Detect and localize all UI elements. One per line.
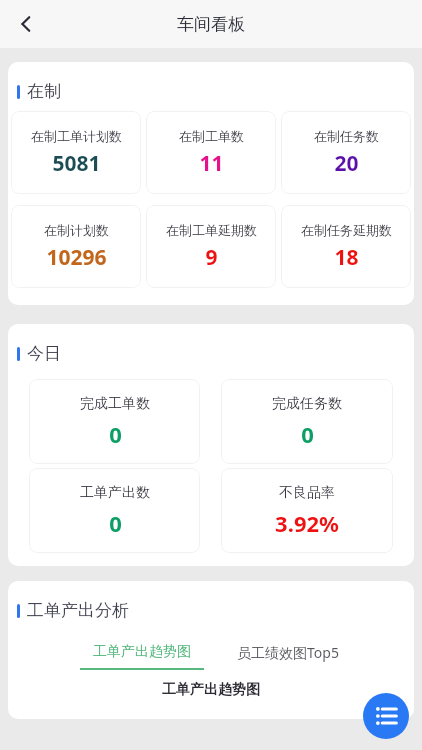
staticText: 0 <box>301 419 314 449</box>
button[interactable]: 在制工单数 <box>146 111 276 194</box>
staticText: 9 <box>205 243 218 272</box>
button[interactable]: 在制任务延期数 <box>281 205 411 288</box>
button[interactable]: 不良品率 <box>221 468 393 553</box>
staticText: 工单产出数 <box>80 484 150 502</box>
staticText: 在制工单计划数 <box>31 128 122 144</box>
staticText: 5081 <box>52 149 101 178</box>
staticText: 在制任务延期数 <box>301 222 392 238</box>
button[interactable]: 完成任务数 <box>221 379 393 464</box>
staticText: 3.92% <box>275 508 339 538</box>
button[interactable]: 在制任务数 <box>281 111 411 194</box>
staticText: 在制工单数 <box>179 128 244 144</box>
button[interactable]: 在制工单延期数 <box>146 205 276 288</box>
staticText: 在制任务数 <box>314 128 379 144</box>
button[interactable]: 在制计划数 <box>11 205 141 288</box>
staticText: 在制工单延期数 <box>166 222 257 238</box>
staticText: 员工绩效图Top5 <box>237 643 339 662</box>
button[interactable]: 工单产出数 <box>29 468 200 553</box>
staticText: 10296 <box>46 243 107 272</box>
staticText: 工单产出趋势图 <box>93 643 191 661</box>
staticText: 今日 <box>27 343 61 364</box>
staticText: 0 <box>109 419 122 449</box>
staticText: 18 <box>334 243 359 272</box>
button[interactable]: 在制工单计划数 <box>11 111 141 194</box>
staticText: 11 <box>199 149 224 178</box>
staticText: 完成工单数 <box>80 395 150 413</box>
staticText: 完成任务数 <box>272 395 342 413</box>
button[interactable]: 完成工单数 <box>29 379 200 464</box>
button[interactable]: Back <box>6 4 46 44</box>
staticText: 工单产出趋势图 <box>8 681 414 699</box>
staticText: 车间看板 <box>177 14 245 35</box>
staticText: 工单产出分析 <box>27 600 129 621</box>
staticText: 0 <box>109 508 122 538</box>
staticText: 在制 <box>27 81 61 102</box>
button[interactable]: 员工绩效图Top5 <box>228 643 348 671</box>
button[interactable]: 工单产出趋势图 <box>74 643 210 670</box>
staticText: 不良品率 <box>279 484 335 502</box>
button[interactable]: Menu list <box>363 693 409 739</box>
staticText: 在制计划数 <box>44 222 109 238</box>
staticText: 20 <box>334 149 359 178</box>
